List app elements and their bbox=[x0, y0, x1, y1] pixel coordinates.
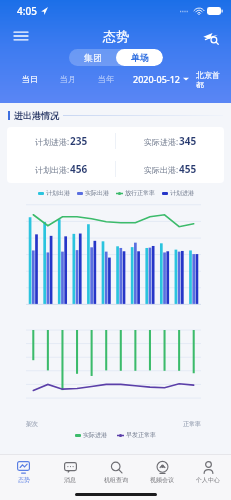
staticText: 实际出港: bbox=[144, 164, 179, 175]
staticText: 单场 bbox=[131, 52, 149, 63]
staticText: 4:05 bbox=[17, 4, 37, 18]
staticText: 态势 bbox=[18, 476, 30, 484]
button[interactable]: 个人中心 bbox=[185, 455, 231, 489]
staticText: 345 bbox=[179, 134, 197, 148]
button[interactable]: Flight search bbox=[197, 23, 223, 49]
button[interactable]: 集团 bbox=[69, 49, 116, 66]
staticText: 当日 bbox=[22, 74, 38, 84]
button[interactable]: 北京首都 bbox=[196, 70, 221, 88]
staticText: 正常率 bbox=[183, 420, 201, 428]
staticText: 实际出港 bbox=[85, 189, 109, 197]
staticText: 计划出港 bbox=[46, 189, 70, 197]
staticText: 当月 bbox=[60, 74, 76, 84]
staticText: 机组查询 bbox=[104, 476, 128, 484]
staticText: 态势 bbox=[103, 28, 129, 44]
staticText: 实际进港 bbox=[83, 431, 107, 439]
staticText: 个人中心 bbox=[196, 476, 220, 484]
button[interactable]: 单场 bbox=[116, 49, 163, 66]
staticText: 455 bbox=[179, 162, 197, 176]
staticText: 235 bbox=[70, 134, 88, 148]
staticText: 消息 bbox=[64, 476, 76, 484]
button[interactable]: 消息 bbox=[47, 455, 93, 489]
staticText: 计划进港: bbox=[35, 136, 70, 147]
staticText: 计划进港 bbox=[170, 189, 194, 197]
staticText: 视频会议 bbox=[150, 476, 174, 484]
staticText: 2020-05-12 bbox=[133, 73, 180, 85]
staticText: 当年 bbox=[98, 74, 114, 84]
button[interactable]: 态势 bbox=[0, 455, 47, 489]
staticText: 北京首都 bbox=[196, 70, 221, 88]
staticText: 计划出港: bbox=[35, 164, 70, 175]
button[interactable]: 2020-05-12 bbox=[132, 73, 190, 85]
button[interactable]: 机组查询 bbox=[93, 455, 139, 489]
staticText: 架次 bbox=[26, 420, 38, 428]
button[interactable]: 当月 bbox=[58, 74, 78, 84]
button[interactable]: 当日 bbox=[20, 74, 40, 84]
staticText: 实际进港: bbox=[144, 136, 179, 147]
staticText: 集团 bbox=[84, 52, 102, 63]
button[interactable]: 视频会议 bbox=[139, 455, 185, 489]
button[interactable]: 当年 bbox=[96, 74, 116, 84]
button[interactable]: Menu bbox=[8, 23, 34, 49]
staticText: 放行正常率 bbox=[125, 189, 155, 197]
staticText: 进出港情况 bbox=[14, 110, 59, 121]
staticText: 早发正常率 bbox=[126, 431, 156, 439]
staticText: 456 bbox=[70, 162, 88, 176]
